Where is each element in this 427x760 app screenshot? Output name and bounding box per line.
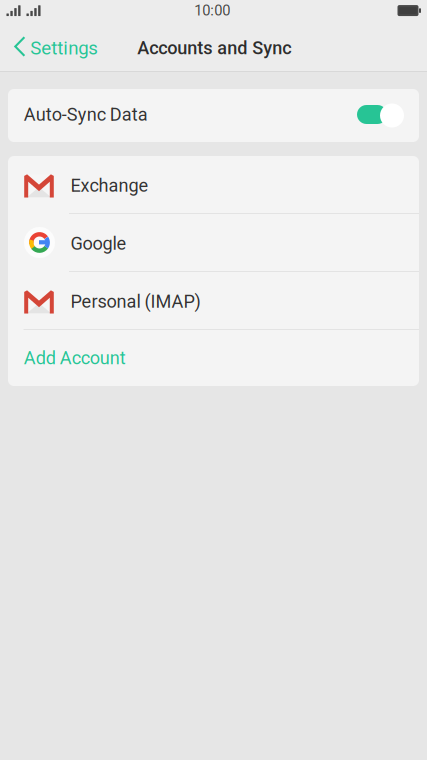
staticText: Personal (IMAP) <box>70 291 200 312</box>
staticText: Google <box>70 233 126 254</box>
staticText: Settings <box>30 37 98 59</box>
button[interactable]: Personal (IMAP) <box>8 272 419 329</box>
button[interactable]: Auto-Sync Data <box>8 89 419 142</box>
staticText: Add Account <box>24 347 126 369</box>
button[interactable]: Settings <box>0 25 110 71</box>
staticText: Exchange <box>70 175 148 196</box>
staticText: Accounts and Sync <box>137 37 291 59</box>
button[interactable]: Exchange <box>8 156 419 213</box>
staticText: 10:00 <box>194 2 230 19</box>
button[interactable]: Add Account <box>8 330 419 386</box>
staticText: Auto-Sync Data <box>24 104 148 125</box>
button[interactable]: Google <box>8 214 419 271</box>
